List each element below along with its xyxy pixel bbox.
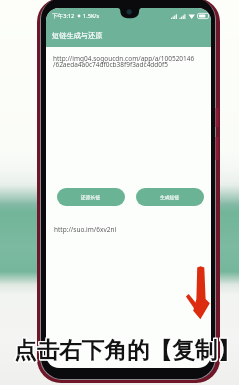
staticText: 点击右下角的【复制】 xyxy=(14,337,239,365)
staticText: 点击右下角的【复制】 xyxy=(13,335,239,363)
staticText: 还原长链 xyxy=(81,194,101,200)
staticText: 点击右下角的【复制】 xyxy=(13,337,239,365)
staticText: 点击右下角的【复制】 xyxy=(13,336,239,364)
staticText: 点击右下角的【复制】 xyxy=(15,337,239,365)
staticText: http://img04.sogoucdn.com/app/a/10052014… xyxy=(53,54,195,69)
staticText: 点击右下角的【复制】 xyxy=(14,336,239,364)
staticText: 点击右下角的【复制】 xyxy=(15,336,239,364)
button[interactable]: 生成短链 xyxy=(136,188,204,206)
button[interactable]: 还原长链 xyxy=(57,188,125,206)
staticText: 点击右下角的【复制】 xyxy=(15,335,239,363)
staticText: 生成短链 xyxy=(160,194,180,200)
staticText: 短链生成与还原 xyxy=(52,31,103,40)
staticText: 点击右下角的【复制】 xyxy=(14,335,239,363)
staticText: 1.5K/s xyxy=(83,12,100,20)
staticText: 下午3:12 xyxy=(52,12,75,20)
staticText: http://suo.im/6xv2nl xyxy=(54,225,117,234)
